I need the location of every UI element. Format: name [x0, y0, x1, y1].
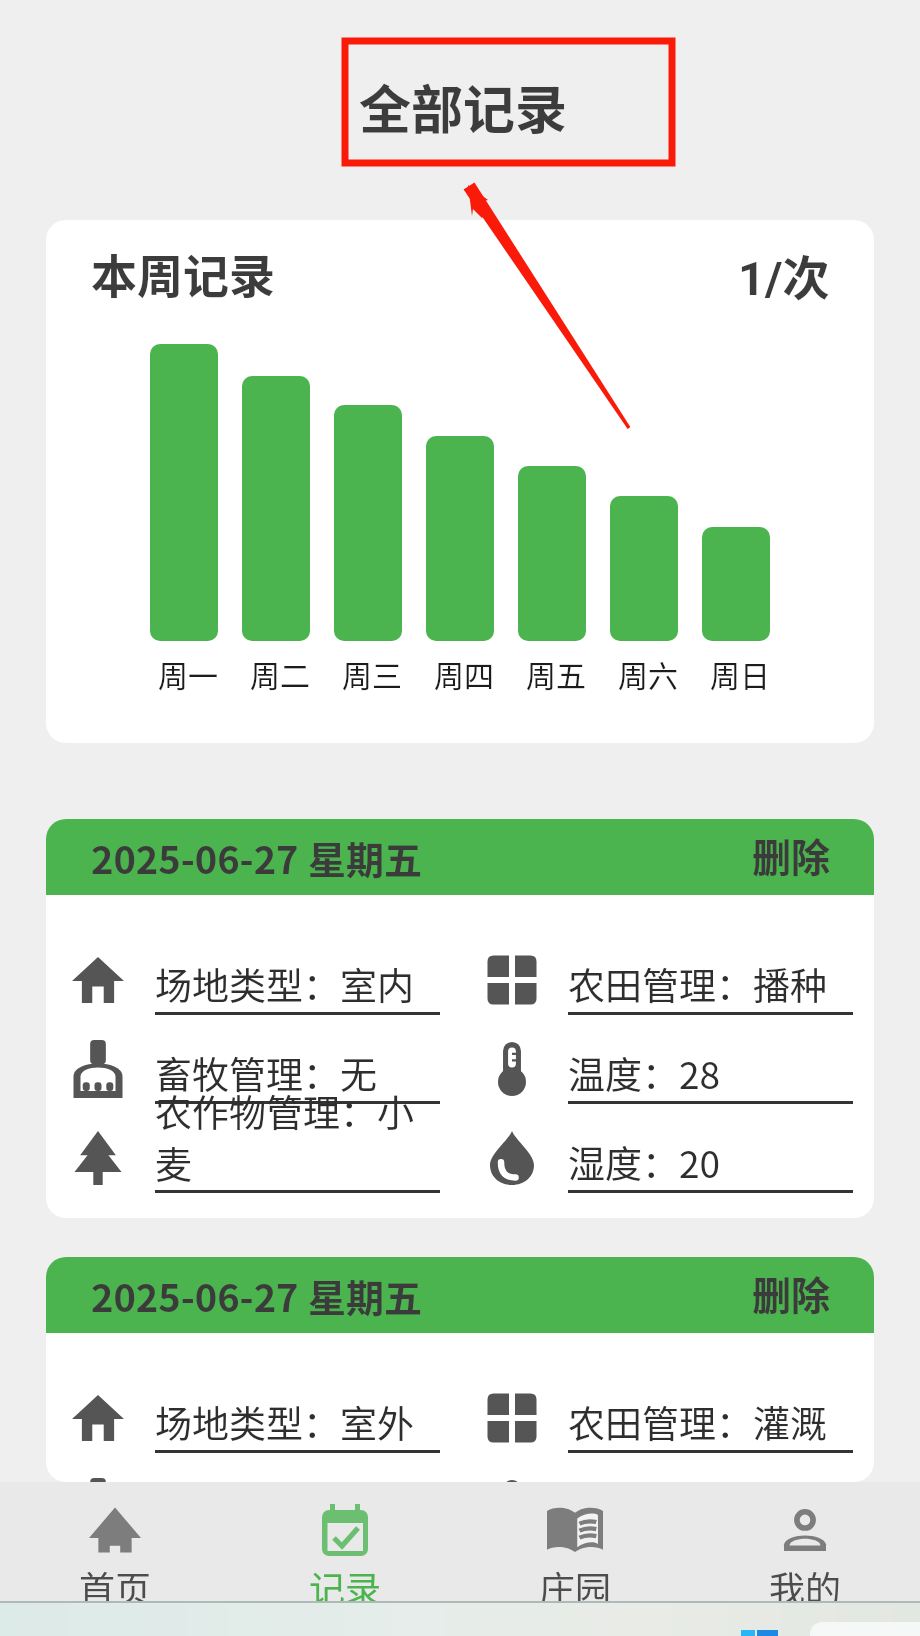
staticText: 删除 — [752, 1265, 831, 1321]
button[interactable]: 首页 — [0, 1482, 230, 1601]
staticText: 周六 — [618, 652, 678, 695]
button[interactable]: 记录 — [230, 1482, 460, 1601]
staticText: 1/次 — [738, 240, 830, 308]
staticText: 农作物管理：小麦 — [155, 1084, 440, 1189]
staticText: 畜牧管理：无 — [155, 1046, 377, 1100]
staticText: 星期五 — [308, 1268, 423, 1323]
button[interactable]: 删除 — [735, 819, 847, 891]
staticText: 周一 — [158, 652, 218, 695]
staticText: 星期五 — [308, 830, 423, 885]
staticText: 2025-06-27 — [91, 1268, 308, 1323]
staticText: 2025-06-27 — [91, 830, 308, 885]
staticText: 周五 — [526, 652, 586, 695]
staticText: 首页 — [79, 1561, 152, 1613]
staticText: 农田管理：灌溉 — [568, 1395, 827, 1449]
staticText: 周日 — [710, 652, 770, 695]
staticText: 温度：28 — [568, 1046, 721, 1100]
staticText: 周二 — [250, 652, 310, 695]
staticText: 庄园 — [539, 1561, 612, 1613]
staticText: 湿度：20 — [568, 1135, 721, 1189]
staticText: 我的 — [769, 1561, 842, 1613]
staticText: 周三 — [342, 652, 402, 695]
staticText: 农田管理：播种 — [568, 957, 827, 1011]
staticText: 场地类型：室外 — [155, 1395, 414, 1449]
staticText: 本周记录 — [91, 240, 275, 307]
staticText: 全部记录 — [359, 69, 568, 144]
button[interactable]: 删除 — [735, 1257, 847, 1329]
staticText: 场地类型：室内 — [155, 957, 414, 1011]
button[interactable]: 庄园 — [460, 1482, 690, 1601]
staticText: 周四 — [434, 652, 494, 695]
staticText: 记录 — [309, 1561, 382, 1613]
staticText: 删除 — [752, 827, 831, 883]
button[interactable]: 我的 — [690, 1482, 920, 1601]
